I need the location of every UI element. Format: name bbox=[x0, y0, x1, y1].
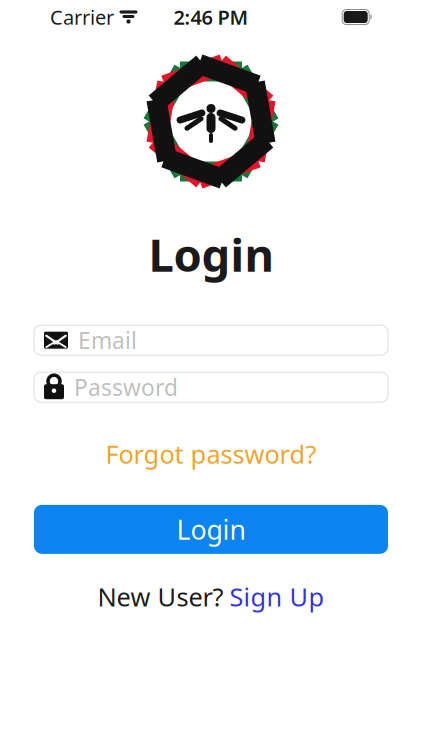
button[interactable]: Password bbox=[34, 372, 388, 402]
staticText: Email bbox=[78, 325, 137, 355]
button[interactable]: Email bbox=[34, 325, 388, 355]
button[interactable]: Login bbox=[34, 505, 388, 554]
staticText: Login bbox=[148, 224, 273, 284]
button[interactable]: Forgot password? bbox=[97, 433, 324, 475]
staticText: Password bbox=[74, 372, 178, 402]
button[interactable]: Sign Up bbox=[229, 580, 324, 613]
staticText: 2:46 PM bbox=[173, 4, 248, 30]
staticText: Forgot password? bbox=[105, 437, 316, 471]
staticText: Carrier bbox=[50, 4, 114, 30]
staticText: Login bbox=[176, 512, 245, 547]
staticText: Sign Up bbox=[229, 580, 324, 613]
staticText: New User? bbox=[97, 580, 223, 613]
